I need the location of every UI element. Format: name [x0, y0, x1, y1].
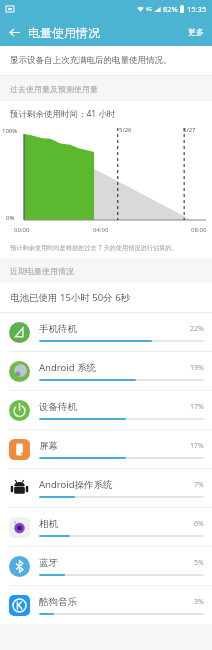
- staticText: 5/27: [183, 126, 196, 134]
- staticText: 0%: [6, 214, 15, 222]
- staticText: 22%: [190, 324, 204, 334]
- staticText: 电池已使用 15小时 50分 6秒: [10, 291, 131, 304]
- button[interactable]: 蓝牙: [0, 547, 212, 585]
- staticText: 08:00: [191, 226, 207, 234]
- button[interactable]: 酷狗音乐: [0, 586, 212, 624]
- button[interactable]: 更多: [180, 22, 212, 42]
- button[interactable]: Android 系统: [0, 352, 212, 390]
- staticText: 19%: [190, 363, 204, 373]
- staticText: Android 系统: [39, 361, 190, 374]
- staticText: 00:00: [14, 226, 30, 234]
- staticText: 预计剩余使用时间：41 小时: [10, 108, 116, 120]
- staticText: 100%: [2, 127, 18, 135]
- staticText: 17%: [190, 402, 204, 412]
- staticText: 7%: [194, 480, 204, 490]
- staticText: 显示设备自上次充满电后的电量使用情况。: [10, 55, 172, 66]
- staticText: 手机待机: [39, 323, 190, 335]
- staticText: 5/26: [119, 126, 132, 134]
- staticText: 酷狗音乐: [39, 596, 194, 608]
- button[interactable]: Android操作系统: [0, 469, 212, 507]
- staticText: 近期电量使用情况: [10, 266, 74, 276]
- button[interactable]: 设备待机: [0, 391, 212, 429]
- staticText: 设备待机: [39, 401, 190, 413]
- button[interactable]: Back: [4, 22, 24, 42]
- staticText: 6%: [194, 519, 204, 529]
- staticText: 5%: [194, 558, 204, 568]
- staticText: 相机: [39, 518, 194, 530]
- staticText: 蓝牙: [39, 557, 194, 569]
- staticText: 屏幕: [39, 440, 190, 452]
- staticText: 预计剩余使用时间是根据您过去 7 天的使用情况进行估算的。: [10, 243, 178, 251]
- staticText: 17%: [190, 441, 204, 451]
- staticText: 4G: [146, 6, 152, 12]
- staticText: 3%: [194, 597, 204, 607]
- staticText: Android操作系统: [39, 478, 194, 491]
- button[interactable]: 屏幕: [0, 430, 212, 468]
- staticText: 82%: [163, 4, 178, 14]
- button[interactable]: 手机待机: [0, 313, 212, 351]
- staticText: 过去使用量及预测使用量: [10, 84, 98, 94]
- staticText: 15:35: [187, 4, 207, 14]
- staticText: 更多: [188, 27, 204, 37]
- button[interactable]: 相机: [0, 508, 212, 546]
- staticText: 电量使用情况: [28, 25, 100, 40]
- staticText: 04:00: [93, 226, 109, 234]
